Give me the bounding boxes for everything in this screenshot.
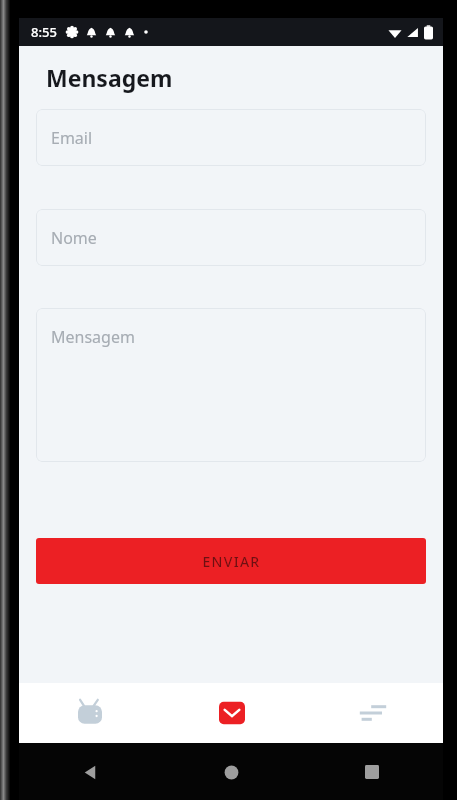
- button[interactable]: Menu: [302, 683, 443, 743]
- staticText: Nome: [51, 227, 97, 249]
- button[interactable]: Recents: [348, 748, 396, 796]
- button[interactable]: Canais: [19, 683, 161, 743]
- button[interactable]: Mensagem: [161, 683, 302, 743]
- staticText: Email: [51, 127, 93, 149]
- staticText: Mensagem: [51, 326, 135, 348]
- button[interactable]: Email: [36, 109, 426, 166]
- staticText: Mensagem: [46, 62, 173, 93]
- button[interactable]: ENVIAR: [36, 538, 426, 584]
- staticText: 8:55: [31, 23, 57, 41]
- button[interactable]: Home: [207, 748, 255, 796]
- button[interactable]: Nome: [36, 209, 426, 266]
- button[interactable]: Mensagem: [36, 308, 426, 462]
- button[interactable]: Back: [66, 748, 114, 796]
- staticText: ENVIAR: [202, 552, 261, 571]
